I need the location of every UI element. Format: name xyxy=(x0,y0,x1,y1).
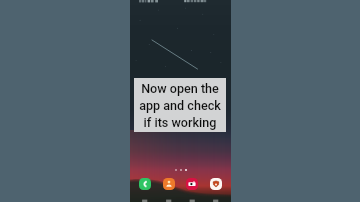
button[interactable]: Camera xyxy=(186,178,198,190)
button[interactable]: Phone xyxy=(139,178,151,190)
button[interactable]: Contacts xyxy=(163,178,175,190)
button[interactable]: Brave Browser xyxy=(210,178,222,190)
staticText: Now open the app and check if its workin… xyxy=(139,81,221,130)
